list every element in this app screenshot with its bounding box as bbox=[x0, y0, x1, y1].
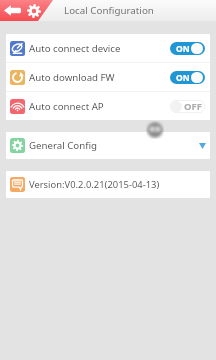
staticText: ON bbox=[176, 72, 190, 84]
button[interactable]: Toggle on bbox=[170, 71, 205, 84]
button[interactable]: Auto connect device bbox=[6, 34, 210, 62]
button[interactable]: Toggle off bbox=[170, 100, 205, 113]
button[interactable]: Toggle on bbox=[170, 42, 205, 55]
button[interactable]: Auto download FW bbox=[6, 63, 210, 91]
staticText: OFF bbox=[184, 100, 202, 113]
staticText: Auto download FW bbox=[29, 71, 115, 84]
button[interactable]: Expand bbox=[198, 136, 207, 156]
staticText: Auto connect device bbox=[29, 42, 121, 55]
button[interactable]: Version:V0.2.0.21(2015-04-13) bbox=[6, 171, 210, 198]
button[interactable]: Auto connect AP bbox=[6, 92, 210, 120]
button[interactable]: Settings bbox=[24, 0, 43, 21]
staticText: Version:V0.2.0.21(2015-04-13) bbox=[29, 178, 160, 191]
button[interactable]: General Config bbox=[6, 132, 210, 159]
staticText: General Config bbox=[29, 139, 97, 152]
staticText: Auto connect AP bbox=[29, 100, 104, 113]
staticText: Local Configuration bbox=[64, 4, 154, 17]
button[interactable]: Back bbox=[0, 0, 24, 21]
staticText: ON bbox=[176, 43, 190, 55]
